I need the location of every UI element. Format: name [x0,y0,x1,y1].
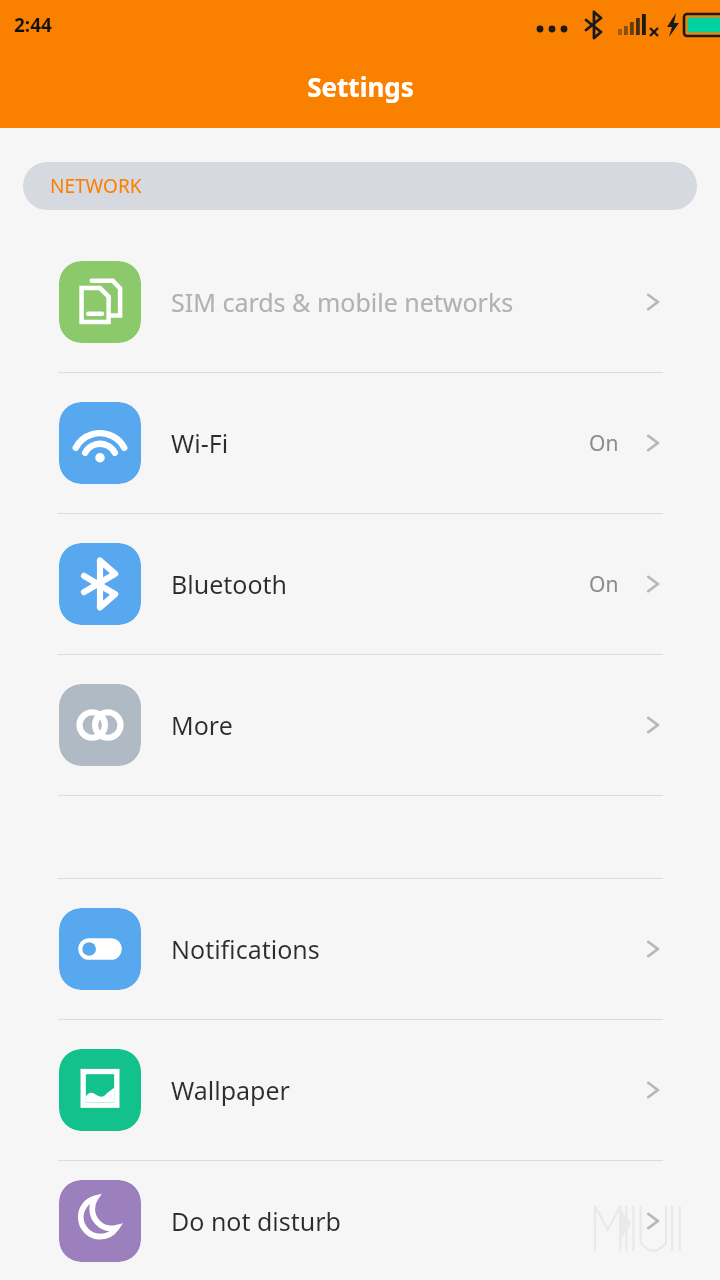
staticText: Notifications [171,932,643,966]
staticText: Do not disturb [171,1204,643,1238]
staticText: SIM cards & mobile networks [171,285,643,319]
staticText: Bluetooth [171,567,589,601]
staticText: On [589,570,619,599]
button[interactable]: Wi-Fi [0,373,720,513]
button[interactable]: Notifications [0,879,720,1019]
staticText: NETWORK [50,173,142,199]
button[interactable]: Do not disturb [0,1161,720,1280]
staticText: More [171,708,643,742]
button[interactable]: Bluetooth [0,514,720,654]
staticText: 2:44 [14,12,52,38]
button[interactable]: SIM cards & mobile networks [0,232,720,372]
button[interactable]: More [0,655,720,795]
staticText: Wallpaper [171,1073,643,1107]
staticText: On [589,429,619,458]
button[interactable]: Wallpaper [0,1020,720,1160]
staticText: Settings [307,69,414,104]
staticText: Wi-Fi [171,426,589,460]
